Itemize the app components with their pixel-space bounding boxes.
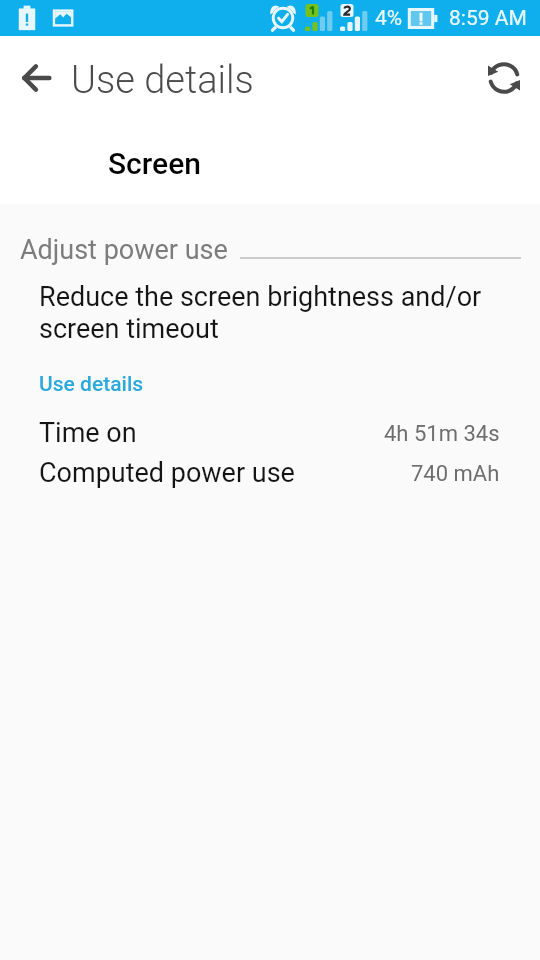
staticText: Adjust power use [20, 234, 228, 266]
staticText: Reduce the screen brightness and/or scre… [39, 281, 482, 344]
staticText: Use details [71, 58, 254, 103]
staticText: 8:59 AM [449, 6, 527, 31]
staticText: 740 mAh [411, 461, 500, 487]
staticText: Time on [39, 417, 137, 449]
button[interactable]: Back [12, 54, 60, 102]
staticText: Use details [39, 372, 144, 397]
staticText: Screen [108, 146, 201, 181]
staticText: Computed power use [39, 457, 295, 489]
button[interactable]: Time on [0, 417, 540, 449]
button[interactable]: Computed power use [0, 457, 540, 489]
staticText: 4% [375, 6, 403, 31]
button[interactable]: Refresh [480, 54, 528, 102]
button[interactable]: Use details [39, 372, 144, 397]
staticText: 4h 51m 34s [384, 421, 500, 447]
